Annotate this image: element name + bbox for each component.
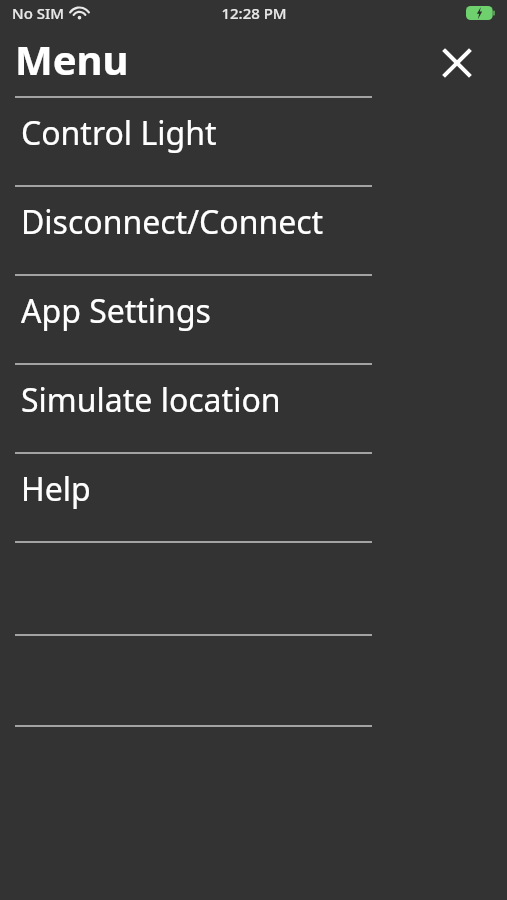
staticText: 12:28 PM (221, 3, 287, 23)
staticText: Menu (15, 32, 129, 86)
staticText: App Settings (21, 289, 211, 333)
staticText: Control Light (21, 111, 217, 155)
button[interactable]: Close (440, 46, 474, 80)
staticText: No SIM (12, 3, 65, 23)
staticText: Help (21, 467, 91, 511)
staticText: Disconnect/Connect (21, 200, 324, 244)
button[interactable]: Simulate location (0, 365, 507, 452)
button[interactable]: Disconnect/Connect (0, 187, 507, 274)
button[interactable]: App Settings (0, 276, 507, 363)
button[interactable]: Control Light (0, 98, 507, 185)
staticText: Simulate location (21, 378, 281, 422)
button[interactable]: Help (0, 454, 507, 541)
